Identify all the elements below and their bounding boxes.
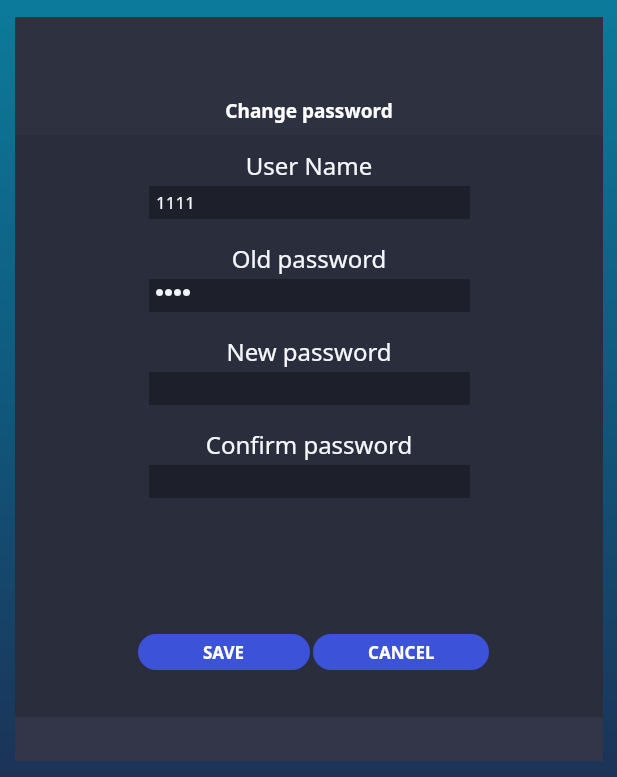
staticText: Change password (15, 98, 603, 124)
staticText: 1111 (156, 191, 195, 214)
staticText: Confirm password (15, 428, 603, 461)
button[interactable] (149, 279, 470, 312)
button[interactable]: SAVE (138, 634, 310, 670)
staticText: CANCEL (368, 641, 435, 664)
staticText: User Name (15, 149, 603, 182)
staticText: Old password (15, 242, 603, 275)
staticText: SAVE (203, 641, 245, 664)
staticText: New password (15, 335, 603, 368)
button[interactable]: CANCEL (313, 634, 489, 670)
button[interactable]: 1111 (149, 186, 470, 219)
